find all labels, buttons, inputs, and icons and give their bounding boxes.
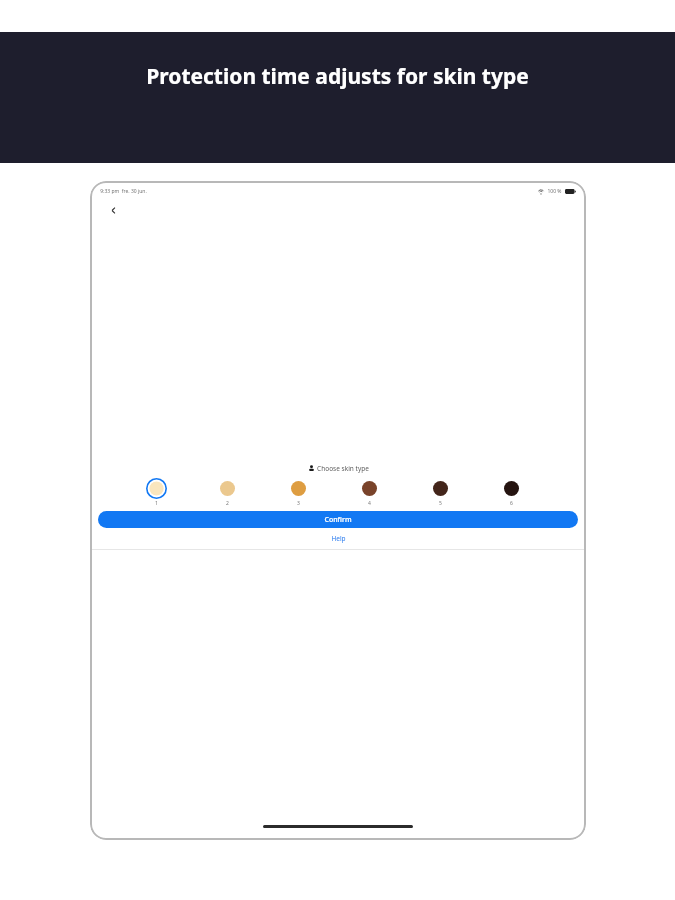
staticText: 1 xyxy=(155,500,158,507)
staticText: Choose skin type xyxy=(317,464,369,473)
button[interactable]: Skin type 6 xyxy=(501,478,522,499)
staticText: 3 xyxy=(297,500,300,507)
button[interactable]: Help xyxy=(90,528,586,549)
button[interactable]: Skin type 3 xyxy=(288,478,309,499)
button[interactable]: Back xyxy=(104,201,122,219)
staticText: Confirm xyxy=(324,515,352,525)
button[interactable]: Skin type 1 xyxy=(146,478,167,499)
staticText: Protection time adjusts for skin type xyxy=(146,62,529,91)
staticText: 2 xyxy=(226,500,229,507)
button[interactable]: Skin type 4 xyxy=(359,478,380,499)
button[interactable]: Confirm xyxy=(98,511,578,528)
button[interactable]: Skin type 5 xyxy=(430,478,451,499)
staticText: 6 xyxy=(510,500,513,507)
staticText: 5 xyxy=(439,500,442,507)
staticText: 100 % xyxy=(547,188,562,195)
staticText: 9:33 pm fre. 30 jun. xyxy=(100,188,147,195)
staticText: Help xyxy=(331,534,346,543)
staticText: 4 xyxy=(368,500,371,507)
button[interactable]: Skin type 2 xyxy=(217,478,238,499)
